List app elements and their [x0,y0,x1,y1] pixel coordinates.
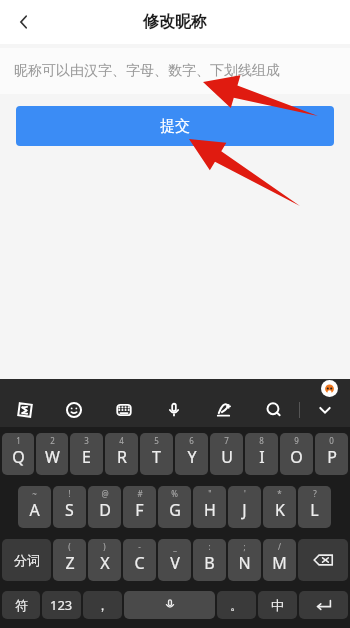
button[interactable]: 5 [140,433,173,475]
staticText: # [137,488,143,499]
staticText: % [171,488,178,499]
staticText: 4 [119,435,124,446]
button[interactable]: ( [53,539,86,581]
staticText: N [238,552,251,574]
button[interactable]: Voice input [149,393,199,427]
staticText: 提交 [160,117,190,136]
button[interactable]: 符 [2,591,40,619]
staticText: _ [173,541,177,552]
staticText: 3 [84,435,89,446]
staticText: @ [101,488,109,499]
staticText: D [99,499,111,521]
staticText: E [82,446,91,468]
button[interactable]: Sogou input [0,393,49,427]
button[interactable]: 分词 [2,539,51,581]
staticText: ， [96,597,109,613]
button[interactable]: _ [158,539,191,581]
button[interactable]: Handwriting [199,393,249,427]
button[interactable]: 123 [42,591,81,619]
staticText: 5 [154,435,159,446]
staticText: 6 [189,435,194,446]
staticText: B [204,552,215,574]
staticText: S [65,499,74,521]
staticText: C [134,552,145,574]
button[interactable]: 9 [280,433,313,475]
button[interactable]: : [193,539,226,581]
staticText: 分词 [14,552,40,568]
button[interactable]: " [193,486,226,528]
button[interactable]: % [158,486,191,528]
staticText: 123 [50,596,73,614]
staticText: L [310,499,319,521]
staticText: 8 [259,435,264,446]
button[interactable]: - [123,539,156,581]
staticText: X [100,552,110,574]
button[interactable]: 4 [105,433,138,475]
staticText: 1 [16,435,21,446]
button[interactable]: ~ [18,486,51,528]
staticText: * [277,488,282,499]
button[interactable]: * [263,486,296,528]
staticText: ; [243,541,246,552]
staticText: / [278,541,281,552]
staticText: 0 [329,435,334,446]
staticText: T [152,446,161,468]
staticText: 昵称可以由汉字、字母、数字、下划线组成 [14,62,280,80]
button[interactable]: 6 [175,433,208,475]
button[interactable]: Back [6,4,42,40]
staticText: Z [65,552,75,574]
staticText: Y [187,446,197,468]
staticText: ( [68,541,71,552]
button[interactable]: Keyboard layout [99,393,149,427]
staticText: ) [103,541,106,552]
staticText: - [138,541,141,552]
button[interactable]: 2 [36,433,68,475]
staticText: ! [68,488,71,499]
staticText: " [208,488,212,499]
staticText: 修改昵称 [143,12,207,32]
button[interactable]: ) [88,539,121,581]
button[interactable]: 提交 [16,106,334,146]
button[interactable]: Collapse keyboard [300,393,350,427]
staticText: 9 [294,435,299,446]
staticText: F [135,499,144,521]
button[interactable]: ! [53,486,86,528]
button[interactable]: 中 [258,591,297,619]
staticText: 中 [271,597,284,613]
button[interactable]: @ [88,486,121,528]
staticText: 符 [15,597,28,613]
staticText: P [327,446,337,468]
staticText: U [221,446,233,468]
button[interactable]: Backspace [298,539,348,581]
staticText: R [117,446,127,468]
button[interactable]: Profile [321,380,338,397]
button[interactable]: Enter [299,591,348,619]
button[interactable]: ; [228,539,261,581]
button[interactable]: 8 [245,433,278,475]
button[interactable]: # [123,486,156,528]
staticText: 。 [230,597,243,613]
button[interactable]: 7 [210,433,243,475]
staticText: W [45,446,60,468]
button[interactable]: Emoji [49,393,99,427]
staticText: ? [313,488,317,499]
staticText: J [242,499,247,521]
staticText: M [272,552,287,574]
staticText: I [259,446,265,468]
button[interactable]: 1 [2,433,34,475]
button[interactable]: 0 [315,433,348,475]
staticText: Q [12,446,25,468]
button[interactable]: ? [298,486,331,528]
staticText: V [170,552,180,574]
button[interactable]: 昵称可以由汉字、字母、数字、下划线组成 [0,48,350,94]
button[interactable]: Search [249,393,299,427]
staticText: ' [244,488,246,499]
button[interactable]: Space [124,591,215,619]
button[interactable]: 3 [70,433,103,475]
staticText: G [169,499,181,521]
button[interactable]: ' [228,486,261,528]
button[interactable]: ， [83,591,122,619]
button[interactable]: / [263,539,296,581]
button[interactable]: 。 [217,591,256,619]
staticText: O [290,446,303,468]
